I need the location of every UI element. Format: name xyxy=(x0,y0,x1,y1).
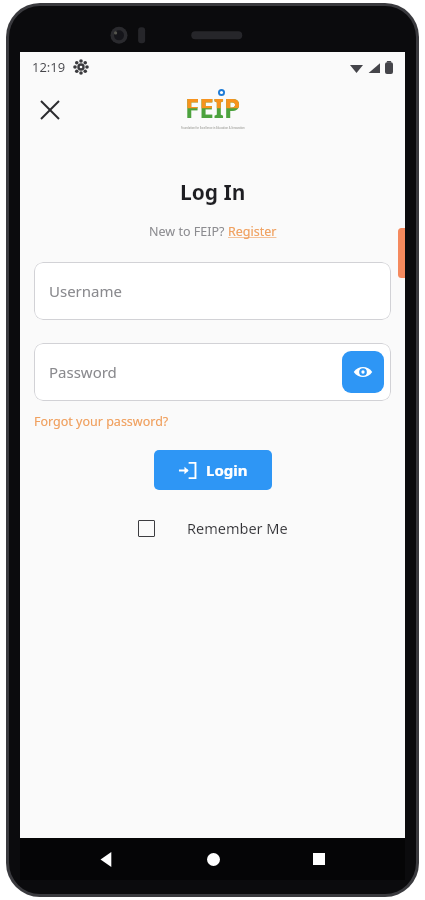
button[interactable]: Register xyxy=(228,223,277,240)
staticText: Password xyxy=(49,362,117,382)
staticText: Register xyxy=(228,223,277,240)
staticText: FEIP xyxy=(185,90,241,125)
button[interactable]: Back xyxy=(86,839,126,879)
staticText: FEIP xyxy=(185,90,241,125)
staticText: Forgot your password? xyxy=(34,413,169,430)
button[interactable]: Feedback tab xyxy=(398,228,405,278)
staticText: Foundation for Excellence in Education &… xyxy=(181,126,245,130)
button[interactable]: Username xyxy=(34,262,391,320)
button[interactable]: Recent apps xyxy=(299,839,339,879)
button[interactable]: Remember Me xyxy=(138,518,288,538)
button[interactable]: Home xyxy=(193,839,233,879)
staticText: Log In xyxy=(180,178,246,207)
staticText: Remember Me xyxy=(187,518,288,538)
button[interactable]: Close xyxy=(29,89,71,131)
staticText: 12:19 xyxy=(32,58,66,76)
button[interactable]: Show password xyxy=(342,351,384,393)
staticText: New to FEIP? xyxy=(149,223,228,240)
button[interactable]: Forgot your password? xyxy=(34,413,169,430)
staticText: Username xyxy=(49,281,122,301)
staticText: Login xyxy=(206,460,248,480)
button[interactable]: Login xyxy=(154,450,272,490)
button[interactable]: Password xyxy=(34,343,391,401)
